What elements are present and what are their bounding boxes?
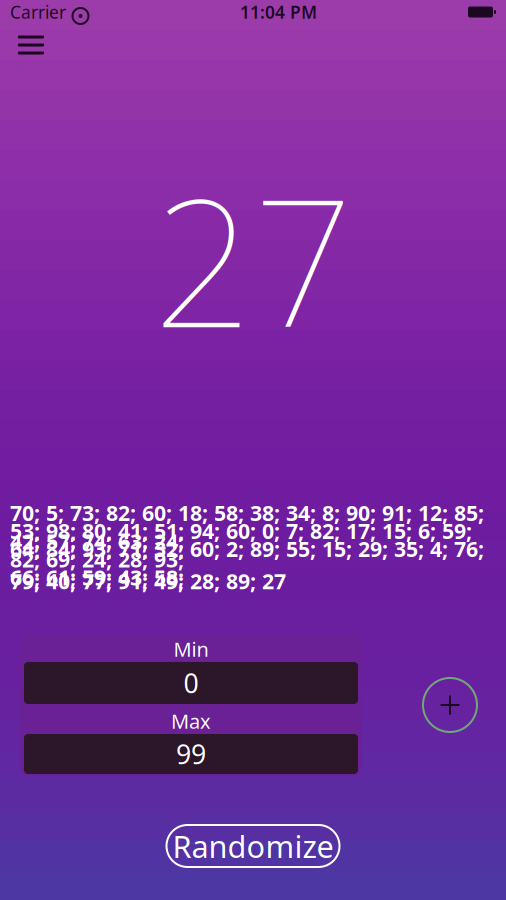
staticText: Max [171,708,211,734]
staticText: Min [173,636,208,662]
button[interactable]: Menu [9,25,53,65]
staticText: 27 [153,142,353,376]
staticText: 79; 40; 77; 91; 49; 28; 89; 27 [10,567,286,595]
staticText: 99 [176,736,206,772]
staticText: 11:04 PM [240,0,317,23]
button[interactable]: Randomize [166,825,339,867]
staticText: 53; 98; 80; 41; 51; 94; 60; 0; 7; 82; 17… [10,517,472,573]
staticText: Randomize [172,826,333,866]
staticText: Carrier [10,0,66,23]
staticText: 70; 5; 73; 82; 60; 18; 58; 38; 34; 8; 90… [10,499,484,555]
button[interactable]: Add [415,670,485,740]
staticText: 64; 84; 93; 71; 32; 60; 2; 89; 55; 15; 2… [10,535,484,591]
staticText: 0 [183,665,198,701]
button[interactable]: 0 [24,662,358,704]
button[interactable]: 99 [24,734,358,774]
